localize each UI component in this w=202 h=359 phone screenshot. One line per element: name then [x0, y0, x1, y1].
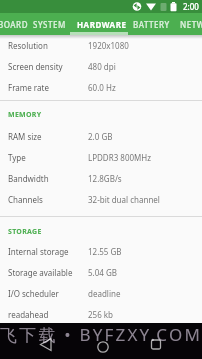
button[interactable]: [135, 323, 202, 359]
staticText: I/O scheduler: [8, 288, 59, 299]
button[interactable]: BOARD: [0, 13, 28, 35]
staticText: 2:00: [183, 1, 199, 12]
button[interactable]: [68, 323, 135, 359]
button[interactable]: Frame rate: [0, 77, 202, 98]
staticText: NETWORK: [180, 19, 202, 30]
button[interactable]: BATTERY: [133, 13, 170, 35]
staticText: Storage available: [8, 267, 73, 278]
button[interactable]: Storage available: [0, 262, 202, 283]
staticText: 256 kb: [88, 309, 113, 320]
button[interactable]: I/O scheduler: [0, 283, 202, 304]
staticText: 32-bit dual channel: [88, 194, 160, 205]
button[interactable]: NETWORK: [180, 13, 202, 35]
staticText: deadline: [88, 288, 121, 299]
button[interactable]: [0, 323, 68, 359]
staticText: RAM size: [8, 131, 42, 142]
staticText: 480 dpi: [88, 61, 116, 72]
staticText: LPDDR3 800MHz: [88, 152, 152, 163]
staticText: STORAGE: [8, 227, 42, 237]
staticText: BATTERY: [133, 19, 170, 30]
staticText: BOARD: [0, 19, 28, 30]
staticText: Bandwidth: [8, 173, 49, 184]
staticText: Type: [8, 152, 26, 163]
button[interactable]: SYSTEM: [33, 13, 66, 35]
staticText: SYSTEM: [33, 19, 66, 30]
staticText: MEMORY: [8, 110, 42, 120]
staticText: 5.04 GB: [88, 267, 117, 278]
button[interactable]: HARDWARE: [77, 13, 127, 35]
staticText: Channels: [8, 194, 43, 205]
button[interactable]: readahead: [0, 304, 202, 325]
button[interactable]: Resolution: [0, 35, 202, 56]
button[interactable]: Type: [0, 147, 202, 168]
staticText: 2.0 GB: [88, 131, 113, 142]
staticText: Frame rate: [8, 82, 49, 93]
staticText: 12.55 GB: [88, 246, 122, 257]
button[interactable]: Channels: [0, 189, 202, 210]
staticText: readahead: [8, 309, 49, 320]
button[interactable]: Bandwidth: [0, 168, 202, 189]
staticText: 1920x1080: [88, 40, 129, 51]
staticText: 60.0 Hz: [88, 82, 116, 93]
staticText: HARDWARE: [77, 19, 127, 30]
staticText: Resolution: [8, 40, 48, 51]
staticText: 12.8GB/s: [88, 173, 122, 184]
staticText: Screen density: [8, 61, 63, 72]
staticText: 飞下载 • BYFZXY.COM: [0, 323, 202, 346]
button[interactable]: Screen density: [0, 56, 202, 77]
staticText: Internal storage: [8, 246, 69, 257]
button[interactable]: RAM size: [0, 126, 202, 147]
button[interactable]: Internal storage: [0, 241, 202, 262]
